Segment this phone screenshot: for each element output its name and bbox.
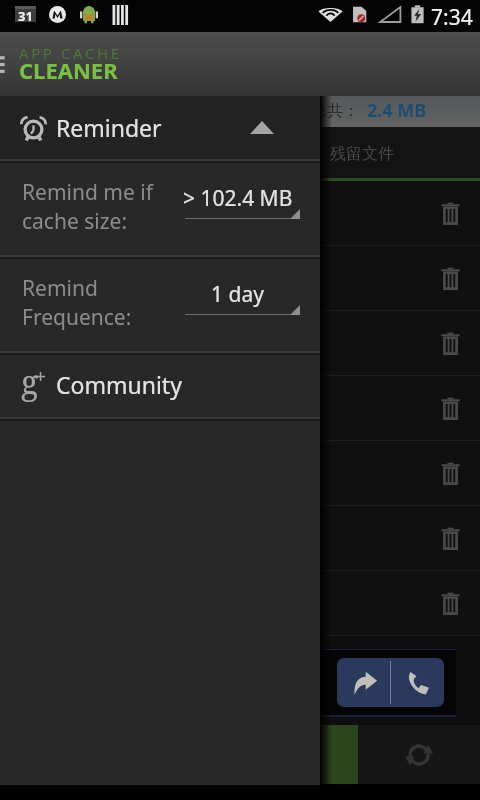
button[interactable]: Open navigation drawer xyxy=(0,51,9,77)
staticText: > 102.4 MB xyxy=(183,184,293,213)
staticText: 1 day xyxy=(211,280,264,309)
staticText: 7:34 xyxy=(431,3,473,32)
staticText: Community xyxy=(56,369,182,400)
staticText: CLEANER xyxy=(19,55,118,85)
staticText: Reminder xyxy=(56,112,162,143)
staticText: 2.4 MB xyxy=(367,98,427,123)
staticText: 总共： xyxy=(311,101,359,121)
staticText: Frequence: xyxy=(22,303,132,332)
staticText: 31 xyxy=(18,7,33,23)
button[interactable]: Delete xyxy=(441,397,460,420)
button[interactable]: Delete xyxy=(441,267,460,290)
button[interactable]: g xyxy=(0,352,320,418)
staticText: APP CACHE xyxy=(19,43,122,63)
button[interactable]: Call xyxy=(391,658,444,707)
button[interactable]: Remind xyxy=(0,256,320,352)
staticText: g xyxy=(21,360,39,404)
button[interactable]: Delete xyxy=(441,332,460,355)
button[interactable]: Delete xyxy=(441,462,460,485)
button[interactable]: Reminder xyxy=(0,96,320,160)
staticText: 残留文件 xyxy=(330,144,394,164)
staticText: Remind xyxy=(22,274,98,303)
button[interactable]: Refresh xyxy=(358,725,480,784)
button[interactable]: Delete xyxy=(441,592,460,615)
button[interactable]: Share xyxy=(337,658,390,707)
button[interactable]: Remind me if xyxy=(0,160,320,256)
button[interactable]: Delete xyxy=(441,527,460,550)
staticText: cache size: xyxy=(22,207,128,236)
button[interactable]: Delete xyxy=(441,202,460,225)
button[interactable] xyxy=(0,725,358,784)
staticText: Remind me if xyxy=(22,178,153,207)
